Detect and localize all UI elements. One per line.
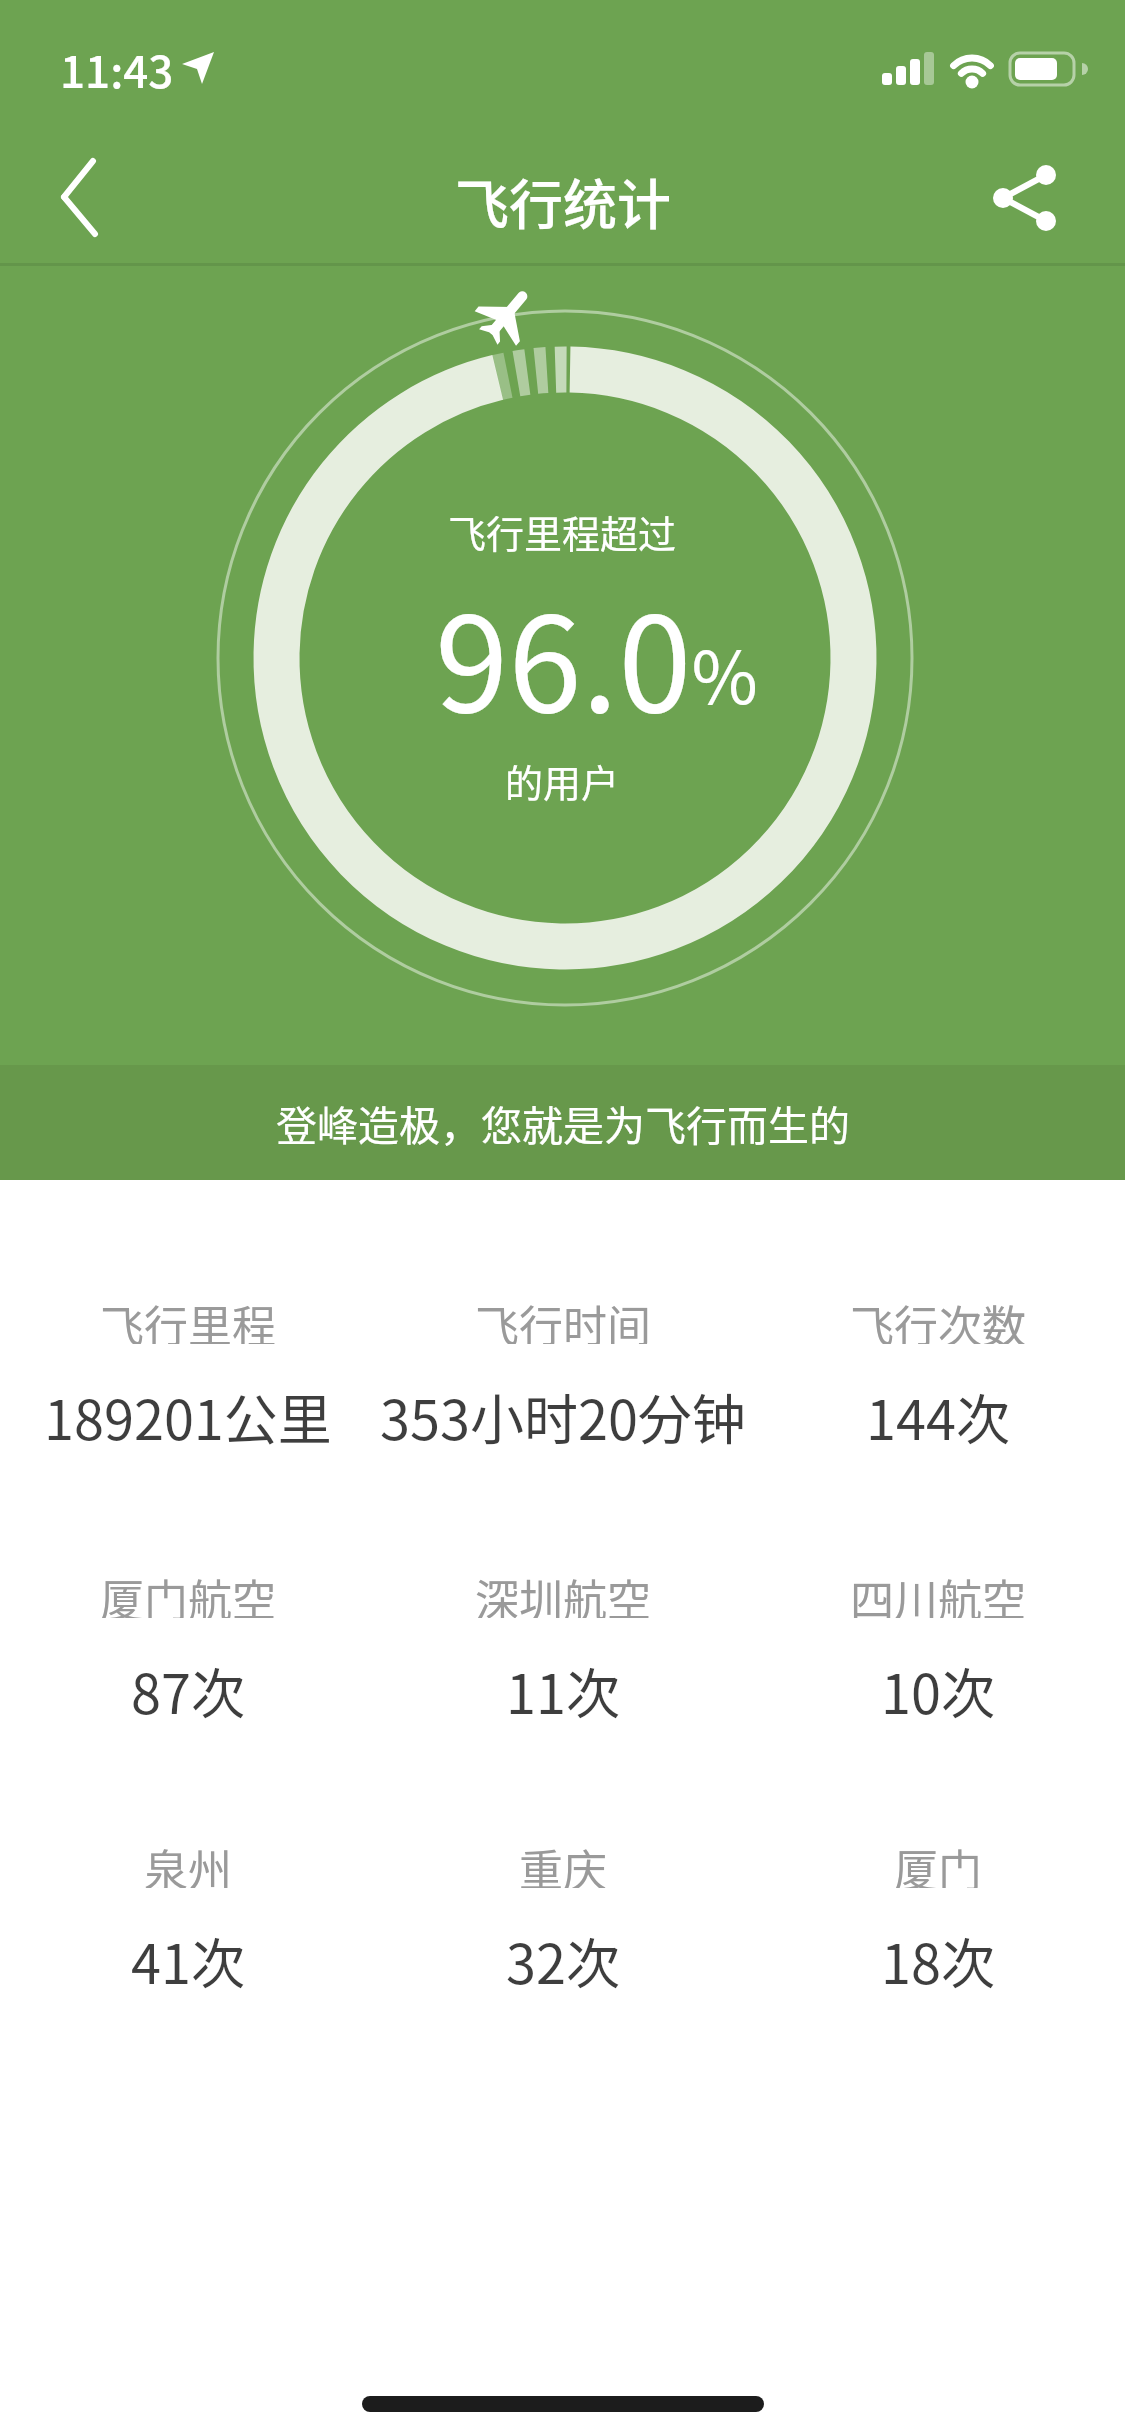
staticText: 飞行时间	[475, 1292, 651, 1344]
staticText: 飞行里程超过	[448, 504, 677, 559]
staticText: 飞行里程	[100, 1292, 276, 1344]
staticText: 11:43	[60, 37, 174, 101]
staticText: 的用户	[505, 753, 620, 808]
staticText: 泉州	[144, 1836, 232, 1888]
button[interactable]: 四川航空	[750, 1566, 1125, 1721]
button[interactable]: 飞行里程	[0, 1292, 375, 1447]
button[interactable]: 泉州	[0, 1836, 375, 1991]
button[interactable]	[40, 140, 130, 230]
staticText: 144次	[866, 1377, 1010, 1447]
button[interactable]: 深圳航空	[375, 1566, 750, 1721]
staticText: 11次	[506, 1651, 620, 1721]
button[interactable]	[975, 140, 1085, 250]
staticText: 10次	[881, 1651, 995, 1721]
staticText: 41次	[131, 1921, 245, 1991]
staticText: 深圳航空	[475, 1566, 651, 1618]
button[interactable]: 飞行次数	[750, 1292, 1125, 1447]
staticText: 飞行统计	[455, 162, 671, 232]
staticText: 厦门航空	[100, 1566, 276, 1618]
staticText: 重庆	[519, 1836, 607, 1888]
staticText: 四川航空	[850, 1566, 1026, 1618]
staticText: 87次	[131, 1651, 245, 1721]
button[interactable]: 飞行时间	[375, 1292, 750, 1447]
button[interactable]: 重庆	[375, 1836, 750, 1991]
staticText: 登峰造极，您就是为飞行而生的	[276, 1093, 850, 1152]
staticText: 厦门	[894, 1836, 982, 1888]
button[interactable]: 厦门	[750, 1836, 1125, 1991]
button[interactable]: 厦门航空	[0, 1566, 375, 1721]
button[interactable]: 11:43	[60, 37, 174, 101]
staticText: 32次	[506, 1921, 620, 1991]
staticText: 189201公里	[44, 1377, 332, 1447]
staticText: 353小时20分钟	[380, 1377, 746, 1447]
staticText: 96.0%	[435, 559, 758, 739]
staticText: 飞行次数	[850, 1292, 1026, 1344]
staticText: 18次	[881, 1921, 995, 1991]
